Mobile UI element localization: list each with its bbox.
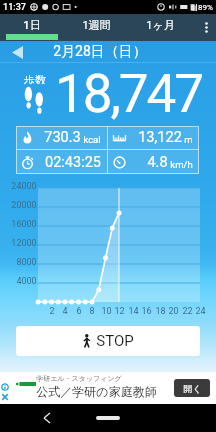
staticText: 18,747	[55, 63, 202, 123]
staticText: 開く	[183, 383, 202, 394]
staticText: 4000	[16, 276, 37, 287]
staticText: 6	[76, 306, 82, 317]
staticText: 18	[155, 306, 166, 317]
staticText: 2	[49, 306, 55, 317]
staticText: km/h	[170, 159, 193, 170]
staticText: STOP	[96, 332, 134, 350]
staticText: 10	[101, 306, 112, 317]
staticText: 24	[195, 306, 206, 317]
staticText: 89%	[198, 3, 213, 12]
button[interactable]: 02:43:25	[16, 150, 107, 174]
staticText: 1ヶ月	[146, 18, 175, 32]
staticText: 1週間	[82, 18, 111, 32]
button[interactable]: 開く	[174, 379, 210, 397]
staticText: 12000	[11, 238, 37, 249]
button[interactable]: Back	[37, 408, 57, 428]
button[interactable]: 1日	[0, 14, 64, 41]
staticText: 4.8	[147, 154, 168, 171]
staticText: 14	[128, 306, 139, 317]
staticText: 20	[168, 306, 179, 317]
button[interactable]: 730.3	[16, 126, 107, 149]
staticText: 24000	[11, 181, 37, 192]
staticText: 4	[62, 306, 68, 317]
staticText: 16	[141, 306, 152, 317]
staticText: 2月28日（日）	[53, 43, 147, 61]
staticText: 22	[182, 306, 193, 317]
button[interactable]: Close ad	[1, 393, 9, 401]
staticText: 8000	[16, 257, 37, 268]
staticText: 20000	[11, 200, 37, 211]
button[interactable]: STOP	[16, 326, 200, 356]
button[interactable]: Previous day	[11, 41, 23, 63]
button[interactable]: Home	[96, 416, 120, 420]
button[interactable]: 13,122	[108, 126, 199, 149]
staticText: 02:43:25	[45, 154, 101, 171]
button[interactable]: More options	[196, 14, 216, 41]
staticText: 8	[89, 306, 95, 317]
staticText: 公式／学研の家庭教師	[36, 384, 157, 399]
staticText: 730.3	[44, 129, 81, 146]
staticText: m	[184, 134, 193, 145]
button[interactable]: 1週間	[64, 14, 128, 41]
staticText: 1日	[23, 18, 41, 32]
staticText: kcal	[83, 134, 101, 145]
button[interactable]: Ad info	[1, 383, 9, 391]
staticText: 16000	[11, 219, 37, 230]
staticText: 11:37	[3, 2, 26, 13]
staticText: 12	[114, 306, 125, 317]
staticText: 学研エル・スタッフィング	[36, 374, 122, 383]
button[interactable]: 4.8	[108, 150, 199, 174]
button[interactable]: 1ヶ月	[128, 14, 192, 41]
staticText: 歩数	[24, 73, 46, 84]
staticText: 13,122	[138, 129, 182, 146]
